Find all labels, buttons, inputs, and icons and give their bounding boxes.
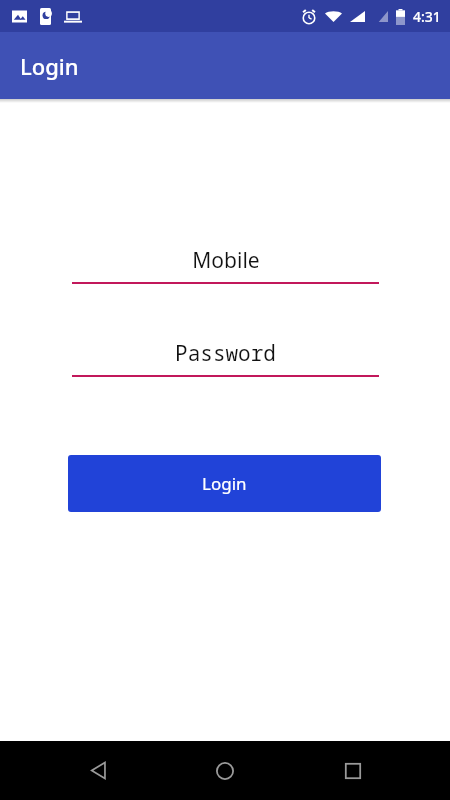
button[interactable]: Recent apps [323,741,383,800]
button[interactable]: Home [195,741,255,800]
staticText: Login [202,472,247,495]
button[interactable]: Login [68,455,381,512]
button[interactable]: Password [72,339,379,377]
staticText: Password [175,339,276,368]
button[interactable]: Mobile [72,246,379,284]
button[interactable]: Back [68,741,128,800]
staticText: 4:31 [413,7,441,26]
staticText: Login [20,51,79,81]
staticText: Mobile [192,246,260,275]
